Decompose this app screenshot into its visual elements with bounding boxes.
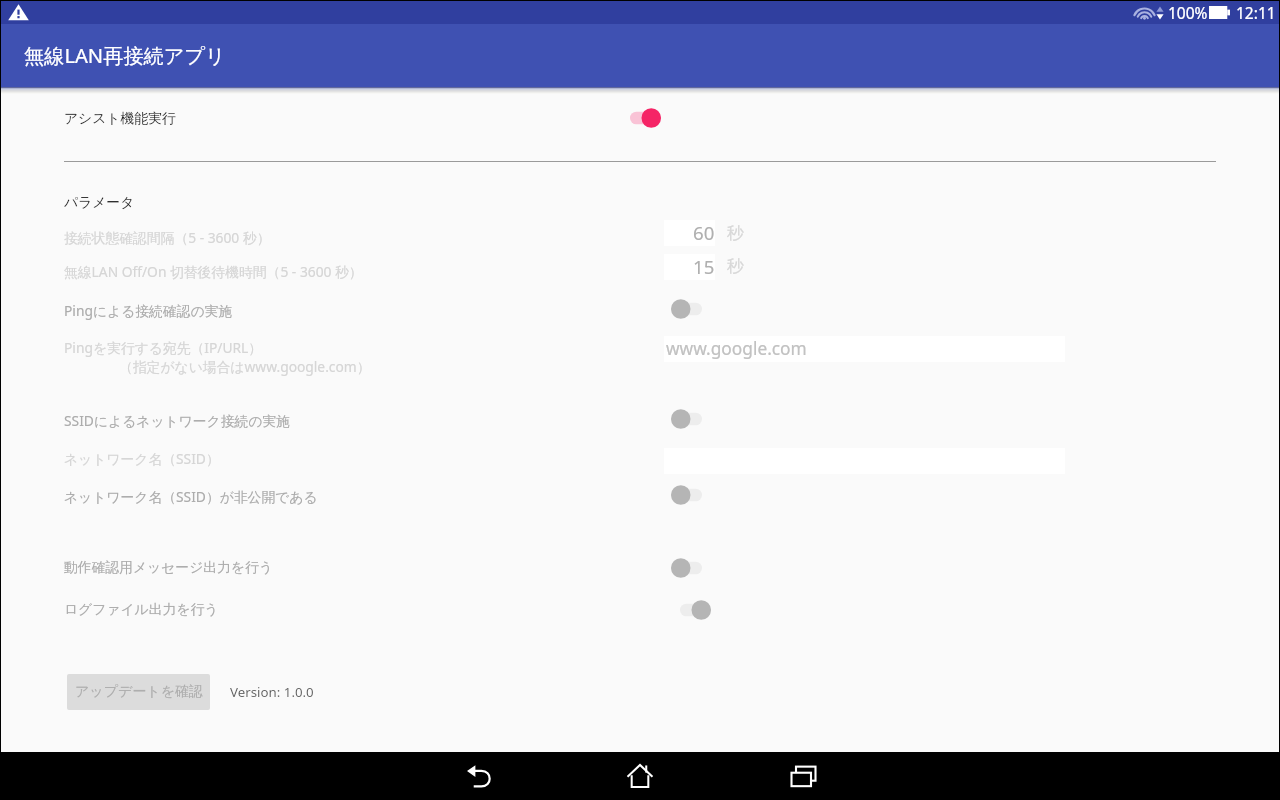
staticText: Pingによる接続確認の実施 bbox=[64, 301, 233, 320]
staticText: Version: 1.0.0 bbox=[230, 683, 314, 701]
button[interactable] bbox=[64, 291, 1216, 326]
staticText: 100% bbox=[1168, 2, 1208, 23]
staticText: ネットワーク名（SSID）が非公開である bbox=[64, 487, 318, 506]
staticText: （指定がない場合はwww.google.com） bbox=[119, 357, 371, 376]
staticText: 12:11 bbox=[1236, 2, 1276, 23]
staticText: ネットワーク名（SSID） bbox=[64, 449, 220, 468]
button[interactable]: Home bbox=[616, 752, 664, 800]
button[interactable]: Toggle bbox=[630, 103, 661, 133]
button[interactable]: www.google.com bbox=[664, 336, 1065, 362]
button[interactable]: Toggle bbox=[671, 404, 702, 434]
staticText: アップデートを確認 bbox=[75, 683, 203, 701]
staticText: アシスト機能実行 bbox=[64, 110, 176, 127]
button[interactable]: 60 bbox=[664, 220, 715, 246]
staticText: 無線LAN Off/On 切替後待機時間（5 - 3600 秒） bbox=[64, 262, 363, 281]
button[interactable]: Toggle bbox=[680, 595, 711, 625]
staticText: ログファイル出力を行う bbox=[64, 601, 219, 618]
staticText: SSIDによるネットワーク接続の実施 bbox=[64, 411, 290, 430]
staticText: Pingを実行する宛先（IP/URL） bbox=[64, 338, 263, 357]
staticText: 60 bbox=[693, 220, 715, 245]
button[interactable]: Recent apps bbox=[779, 752, 827, 800]
staticText: 秒 bbox=[727, 255, 745, 277]
button[interactable] bbox=[64, 401, 1216, 437]
staticText: 無線LAN再接続アプリ bbox=[24, 41, 226, 69]
staticText: 動作確認用メッセージ出力を行う bbox=[64, 559, 273, 576]
button[interactable]: Back bbox=[455, 752, 503, 800]
button[interactable]: 15 bbox=[664, 254, 715, 280]
button[interactable] bbox=[64, 100, 1216, 136]
staticText: 秒 bbox=[727, 222, 745, 244]
staticText: www.google.com bbox=[666, 337, 807, 361]
button[interactable]: Toggle bbox=[671, 480, 702, 510]
button[interactable]: アップデートを確認 bbox=[67, 674, 210, 710]
button[interactable] bbox=[64, 550, 1216, 585]
staticText: パラメータ bbox=[64, 194, 135, 211]
button[interactable] bbox=[64, 592, 1216, 628]
button[interactable]: Toggle bbox=[671, 553, 702, 583]
staticText: 接続状態確認間隔（5 - 3600 秒） bbox=[64, 228, 271, 247]
staticText: 15 bbox=[693, 254, 715, 279]
button[interactable] bbox=[64, 477, 1216, 513]
button[interactable]: Toggle bbox=[671, 294, 702, 324]
